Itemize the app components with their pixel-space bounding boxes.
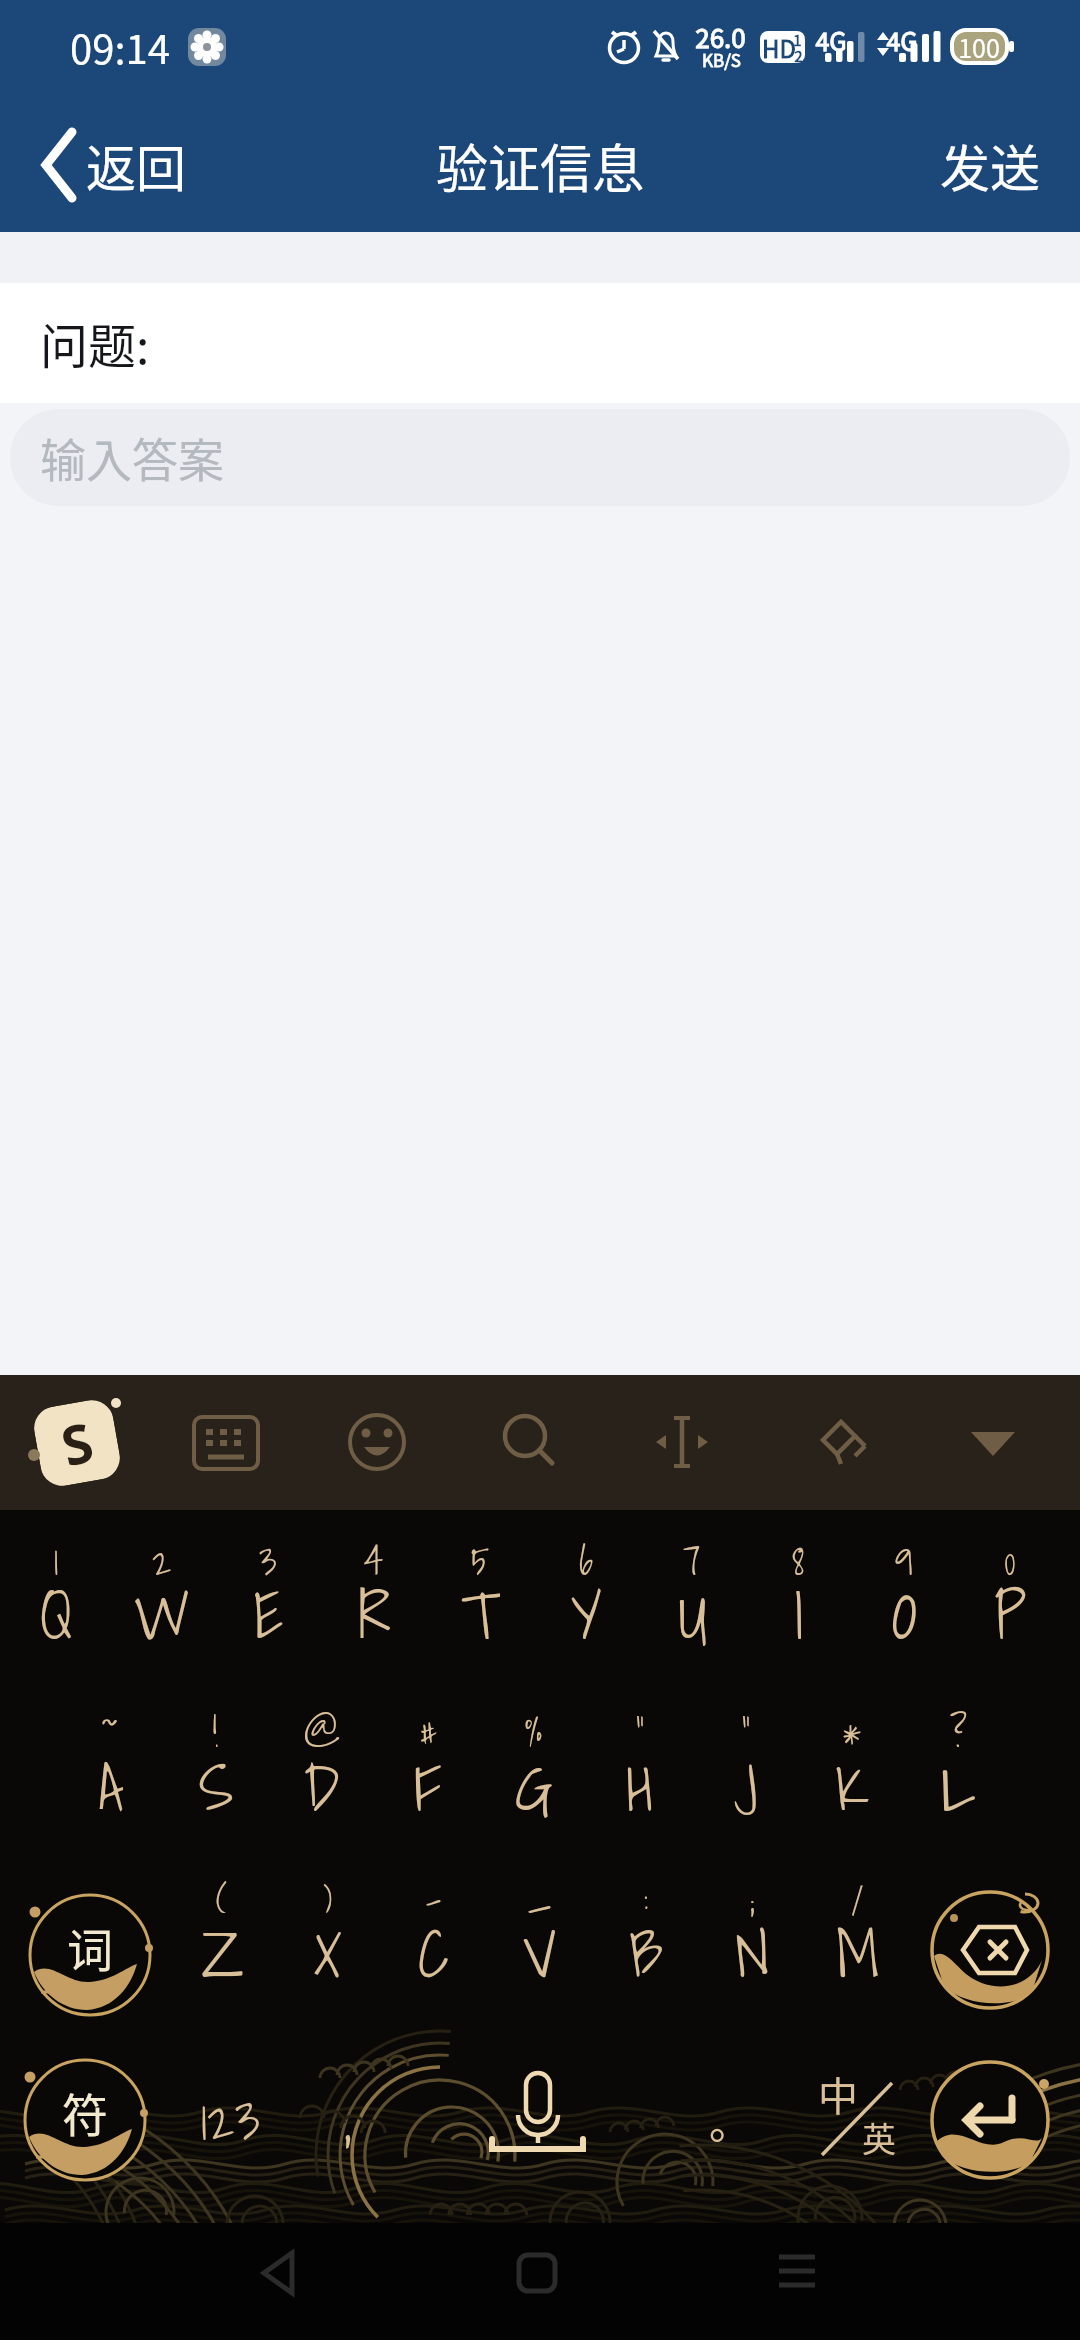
button[interactable] — [332, 1397, 422, 1487]
button[interactable]: 。 — [680, 2070, 780, 2170]
staticText: ? — [950, 1702, 967, 1758]
button[interactable]: 0 — [957, 1530, 1063, 1670]
staticText: ) — [323, 1868, 333, 1924]
staticText: 。 — [709, 2090, 752, 2151]
staticText: 4G — [886, 22, 918, 58]
button[interactable]: S — [30, 1393, 125, 1492]
staticText: H — [626, 1736, 654, 1826]
button[interactable]: ~ — [57, 1702, 163, 1842]
staticText: 中 — [818, 2065, 858, 2123]
staticText: R — [358, 1564, 391, 1654]
button[interactable]: 1 — [3, 1530, 109, 1670]
button[interactable] — [928, 2058, 1053, 2183]
button[interactable]: ” — [693, 1702, 799, 1842]
staticText: _ — [528, 1868, 552, 1924]
staticText: ” — [742, 1702, 751, 1758]
staticText: 8 — [792, 1530, 805, 1586]
button[interactable]: 4 — [321, 1530, 427, 1670]
button[interactable]: “ — [587, 1702, 693, 1842]
staticText: 4G — [815, 22, 847, 58]
staticText: % — [525, 1702, 543, 1758]
staticText: D — [304, 1736, 340, 1826]
button[interactable]: 123 — [170, 2070, 290, 2170]
staticText: 1 — [793, 29, 802, 51]
button[interactable]: ( — [169, 1868, 275, 2008]
button[interactable]: 2 — [109, 1530, 215, 1670]
button[interactable] — [798, 1397, 888, 1487]
button[interactable]: 发送 — [920, 120, 1060, 210]
staticText: 123 — [201, 2077, 260, 2164]
button[interactable]: 返回 — [20, 120, 230, 210]
staticText: V — [523, 1902, 557, 1992]
button[interactable]: : — [593, 1868, 699, 2008]
staticText: ( — [216, 1868, 228, 1924]
staticText: 100 — [958, 29, 1000, 65]
staticText: @ — [304, 1702, 340, 1758]
button[interactable]: / — [805, 1868, 911, 2008]
staticText: J — [734, 1736, 758, 1826]
staticText: 09:14 — [70, 18, 170, 76]
button[interactable] — [230, 2223, 330, 2340]
staticText: 问题: — [40, 308, 150, 378]
button[interactable]: 3 — [215, 1530, 321, 1670]
staticText: 7 — [683, 1530, 701, 1586]
button[interactable]: 9 — [851, 1530, 957, 1670]
staticText: P — [994, 1564, 1027, 1654]
staticText: 5 — [471, 1530, 490, 1586]
staticText: 6 — [579, 1530, 594, 1586]
button[interactable] — [485, 1397, 575, 1487]
button[interactable]: 5 — [427, 1530, 533, 1670]
staticText: ; — [750, 1868, 755, 1924]
staticText: E — [253, 1564, 284, 1654]
staticText: M — [836, 1902, 880, 1992]
button[interactable]: 输入答案 — [10, 409, 1070, 506]
button[interactable] — [747, 2223, 847, 2340]
staticText: U — [678, 1564, 707, 1654]
staticText: 词 — [67, 1914, 113, 1981]
button[interactable]: # — [375, 1702, 481, 1842]
staticText: 符 — [62, 2079, 108, 2146]
staticText: Q — [40, 1564, 73, 1654]
button[interactable] — [948, 1397, 1038, 1487]
button[interactable]: , — [300, 2070, 395, 2170]
button[interactable]: 中 — [800, 2055, 930, 2185]
button[interactable]: ! — [163, 1702, 269, 1842]
staticText: 1 — [54, 1530, 59, 1586]
button[interactable]: 符 — [22, 2057, 148, 2183]
staticText: 2 — [152, 1530, 172, 1586]
staticText: 26.0 — [695, 18, 746, 56]
staticText: 英 — [862, 2113, 896, 2162]
button[interactable]: 7 — [639, 1530, 745, 1670]
staticText: ! — [213, 1702, 219, 1758]
button[interactable]: - — [381, 1868, 487, 2008]
staticText: , — [344, 2072, 351, 2168]
button[interactable]: 6 — [533, 1530, 639, 1670]
staticText: A — [98, 1736, 123, 1826]
staticText: Y — [571, 1564, 602, 1654]
button[interactable]: ? — [905, 1702, 1011, 1842]
staticText: HD — [762, 30, 796, 65]
button[interactable]: 8 — [745, 1530, 851, 1670]
button[interactable]: % — [481, 1702, 587, 1842]
button[interactable] — [637, 1397, 727, 1487]
button[interactable]: * — [799, 1702, 905, 1842]
button[interactable]: 词 — [27, 1892, 153, 2018]
staticText: S — [199, 1736, 234, 1826]
staticText: “ — [636, 1702, 645, 1758]
staticText: T — [461, 1564, 500, 1654]
staticText: 9 — [895, 1530, 914, 1586]
staticText: 验证信息 — [436, 128, 645, 203]
staticText: S — [53, 1403, 101, 1483]
button[interactable] — [438, 2055, 638, 2185]
staticText: F — [414, 1736, 442, 1826]
button[interactable] — [181, 1397, 271, 1487]
button[interactable]: ) — [275, 1868, 381, 2008]
staticText: 4 — [364, 1530, 384, 1586]
button[interactable]: _ — [487, 1868, 593, 2008]
button[interactable]: @ — [269, 1702, 375, 1842]
staticText: * — [843, 1702, 862, 1758]
button[interactable] — [928, 1890, 1053, 2015]
button[interactable] — [487, 2223, 587, 2340]
staticText: 3 — [259, 1530, 277, 1586]
button[interactable]: ; — [699, 1868, 805, 2008]
